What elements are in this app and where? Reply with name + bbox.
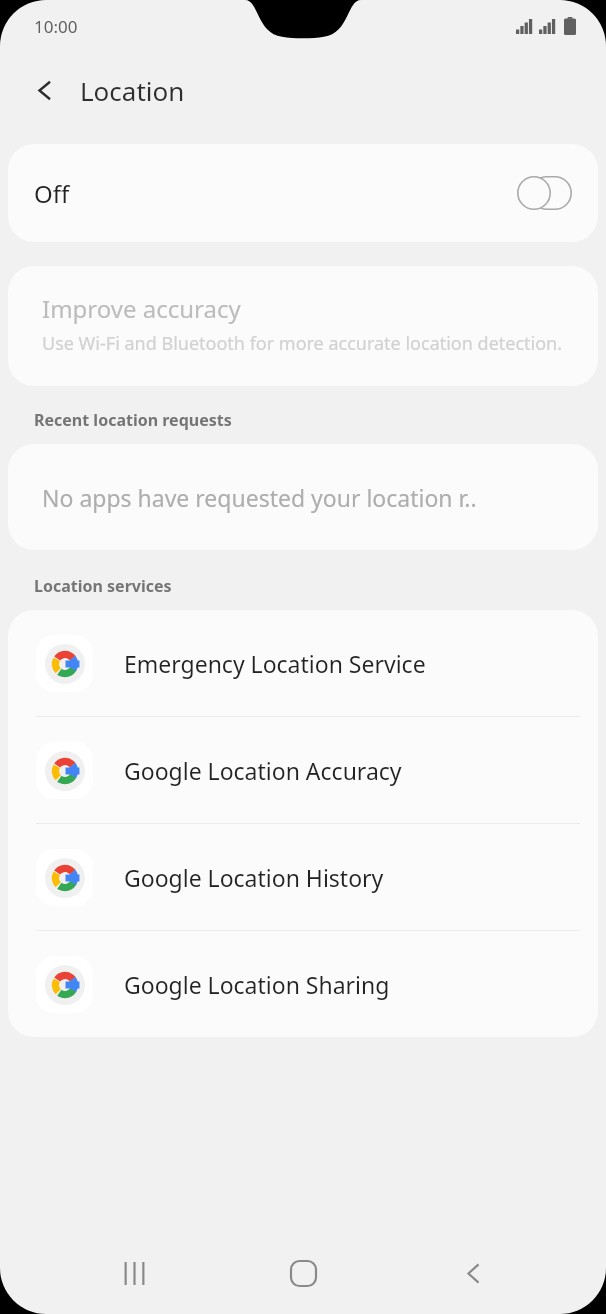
staticText: No apps have requested your location r..	[42, 482, 477, 513]
button[interactable]: Recent apps	[98, 1237, 170, 1309]
staticText: Emergency Location Service	[124, 648, 426, 679]
button[interactable]: Back	[20, 66, 68, 114]
button[interactable]: Off	[8, 144, 598, 242]
staticText: Use Wi-Fi and Bluetooth for more accurat…	[42, 331, 563, 356]
staticText: Off	[34, 177, 70, 210]
staticText: Location	[80, 73, 185, 108]
button[interactable]: Google Location History	[8, 824, 598, 930]
staticText: Location services	[34, 575, 172, 597]
button[interactable]: Google Location Sharing	[8, 931, 598, 1037]
staticText: 10:00	[34, 15, 78, 38]
staticText: Recent location requests	[34, 409, 232, 431]
button[interactable]: Google Location Accuracy	[8, 717, 598, 823]
button[interactable]: Improve accuracy	[8, 266, 598, 386]
staticText: Google Location History	[124, 862, 384, 893]
button[interactable]: Home	[267, 1237, 339, 1309]
button[interactable]: Back	[437, 1237, 509, 1309]
button[interactable]: No apps have requested your location r..	[8, 444, 598, 550]
staticText: Google Location Accuracy	[124, 755, 402, 786]
button[interactable]: Emergency Location Service	[8, 610, 598, 716]
staticText: Google Location Sharing	[124, 969, 390, 1000]
staticText: Improve accuracy	[42, 292, 241, 325]
